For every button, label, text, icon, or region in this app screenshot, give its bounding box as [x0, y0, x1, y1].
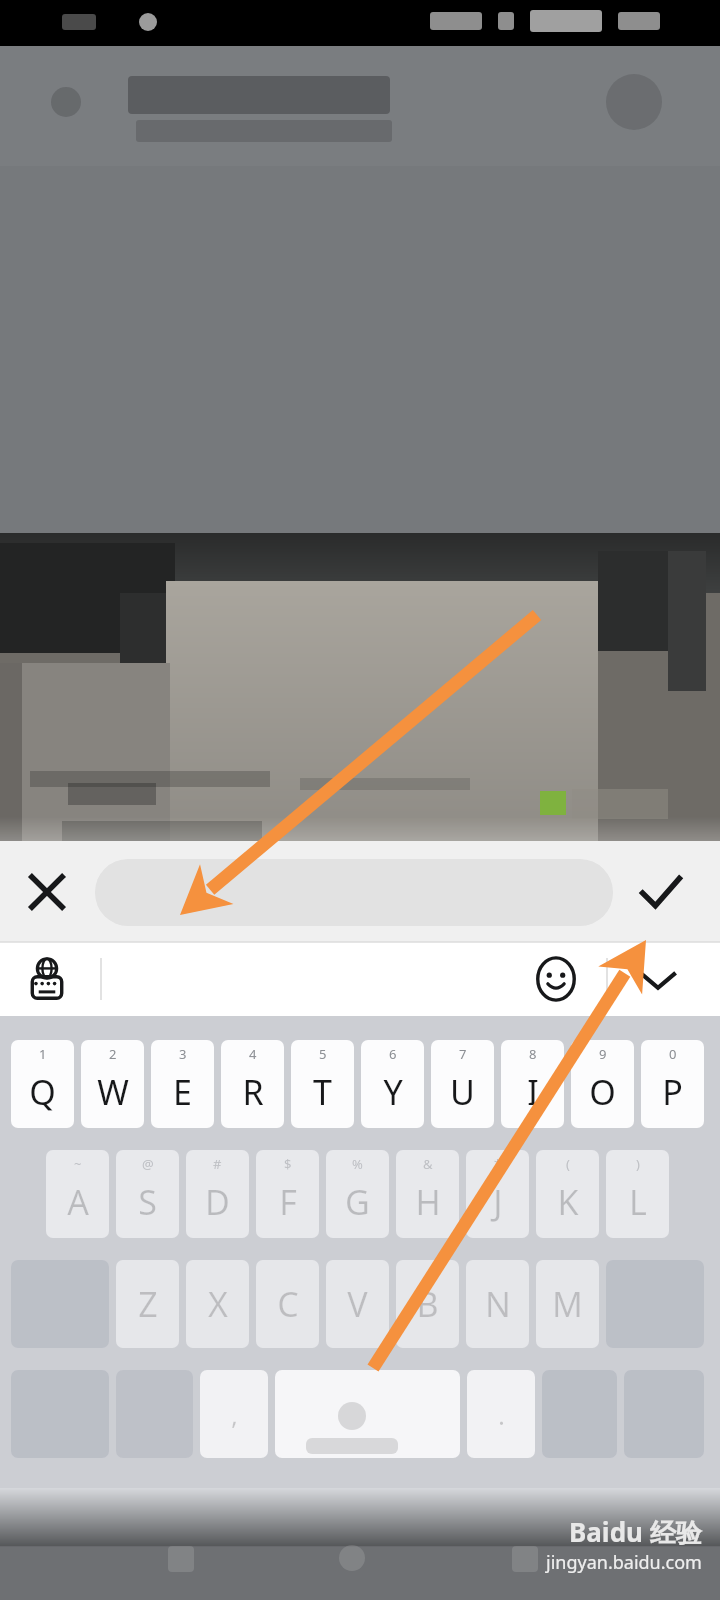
- button[interactable]: &: [396, 1150, 459, 1238]
- staticText: I: [527, 1069, 539, 1115]
- button[interactable]: 6: [361, 1040, 424, 1128]
- button[interactable]: 5: [291, 1040, 354, 1128]
- button[interactable]: 1: [11, 1040, 74, 1128]
- button[interactable]: N: [466, 1260, 529, 1348]
- button[interactable]: Emoji: [525, 948, 587, 1010]
- button[interactable]: *: [466, 1150, 529, 1238]
- staticText: 2: [109, 1045, 117, 1063]
- staticText: T: [313, 1069, 332, 1115]
- button[interactable]: $: [256, 1150, 319, 1238]
- staticText: R: [242, 1069, 264, 1115]
- staticText: 9: [599, 1045, 607, 1063]
- staticText: *: [494, 1155, 502, 1173]
- button[interactable]: .: [467, 1370, 535, 1458]
- staticText: E: [173, 1069, 192, 1115]
- staticText: Y: [383, 1069, 403, 1115]
- button[interactable]: [95, 859, 613, 926]
- staticText: F: [279, 1179, 297, 1225]
- staticText: C: [277, 1281, 299, 1327]
- staticText: U: [450, 1069, 475, 1115]
- button[interactable]: %: [326, 1150, 389, 1238]
- button[interactable]: Hide keyboard: [627, 948, 689, 1010]
- staticText: $: [284, 1155, 292, 1173]
- staticText: M: [552, 1281, 583, 1327]
- staticText: 5: [319, 1045, 327, 1063]
- staticText: L: [629, 1179, 647, 1225]
- button[interactable]: V: [326, 1260, 389, 1348]
- staticText: O: [589, 1069, 616, 1115]
- button[interactable]: 9: [571, 1040, 634, 1128]
- button[interactable]: Switch input language: [16, 948, 78, 1010]
- staticText: W: [97, 1069, 129, 1115]
- staticText: N: [485, 1281, 511, 1327]
- button[interactable]: 2: [81, 1040, 144, 1128]
- staticText: X: [208, 1281, 228, 1327]
- button[interactable]: Confirm: [625, 857, 695, 927]
- staticText: 8: [529, 1045, 537, 1063]
- button[interactable]: Z: [116, 1260, 179, 1348]
- staticText: jingyan.baidu.com: [546, 1550, 702, 1575]
- staticText: #: [213, 1155, 222, 1173]
- staticText: Z: [138, 1281, 158, 1327]
- staticText: 0: [669, 1045, 677, 1063]
- button[interactable]: (: [536, 1150, 599, 1238]
- button[interactable]: 8: [501, 1040, 564, 1128]
- staticText: G: [345, 1179, 370, 1225]
- staticText: H: [415, 1179, 441, 1225]
- staticText: D: [205, 1179, 230, 1225]
- staticText: 4: [249, 1045, 257, 1063]
- staticText: ~: [74, 1155, 82, 1173]
- button[interactable]: B: [396, 1260, 459, 1348]
- button[interactable]: ~: [46, 1150, 109, 1238]
- staticText: (: [566, 1155, 570, 1173]
- button[interactable]: C: [256, 1260, 319, 1348]
- staticText: B: [416, 1281, 439, 1327]
- staticText: 7: [459, 1045, 467, 1063]
- staticText: 1: [39, 1045, 47, 1063]
- button[interactable]: 3: [151, 1040, 214, 1128]
- staticText: ): [636, 1155, 640, 1173]
- staticText: S: [138, 1179, 157, 1225]
- staticText: @: [142, 1155, 154, 1173]
- staticText: Baidu 经验: [569, 1514, 702, 1550]
- button[interactable]: ,: [200, 1370, 268, 1458]
- staticText: .: [498, 1397, 505, 1432]
- button[interactable]: Cancel: [12, 857, 82, 927]
- staticText: P: [662, 1069, 683, 1115]
- button[interactable]: 7: [431, 1040, 494, 1128]
- staticText: K: [557, 1179, 579, 1225]
- button[interactable]: X: [186, 1260, 249, 1348]
- button[interactable]: [275, 1370, 460, 1458]
- staticText: &: [423, 1155, 433, 1173]
- staticText: Q: [29, 1069, 56, 1115]
- staticText: J: [493, 1179, 503, 1225]
- button[interactable]: 4: [221, 1040, 284, 1128]
- staticText: ,: [231, 1397, 238, 1432]
- staticText: V: [347, 1281, 368, 1327]
- staticText: %: [352, 1155, 363, 1173]
- button[interactable]: @: [116, 1150, 179, 1238]
- button[interactable]: #: [186, 1150, 249, 1238]
- button[interactable]: ): [606, 1150, 669, 1238]
- button[interactable]: 0: [641, 1040, 704, 1128]
- staticText: A: [67, 1179, 89, 1225]
- staticText: 3: [179, 1045, 187, 1063]
- button[interactable]: M: [536, 1260, 599, 1348]
- staticText: 6: [389, 1045, 397, 1063]
